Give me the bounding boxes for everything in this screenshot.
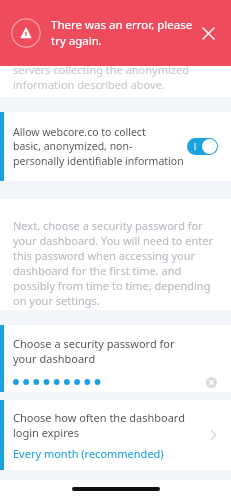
button[interactable]: Dismiss error [195,20,221,46]
staticText: Next, choose a security password for you… [13,218,219,308]
button[interactable]: Clear password [202,373,220,391]
staticText: Choose a security password for your dash… [13,336,175,366]
staticText: If you do not agree to the webcore.co se… [13,47,207,92]
staticText: Allow webcore.co to collect basic, anony… [13,125,187,168]
staticText: Every month (recommended) [13,446,164,461]
button[interactable]: Choose a security password for your dash… [0,325,231,392]
staticText: Choose how often the dashboard login exp… [13,410,185,440]
button[interactable]: There was an error, please try again. [0,0,231,66]
staticText: There was an error, please try again. [51,17,195,49]
button[interactable]: Allow anonymous data collection [187,138,218,155]
button[interactable]: Choose how often the dashboard login exp… [0,400,231,470]
